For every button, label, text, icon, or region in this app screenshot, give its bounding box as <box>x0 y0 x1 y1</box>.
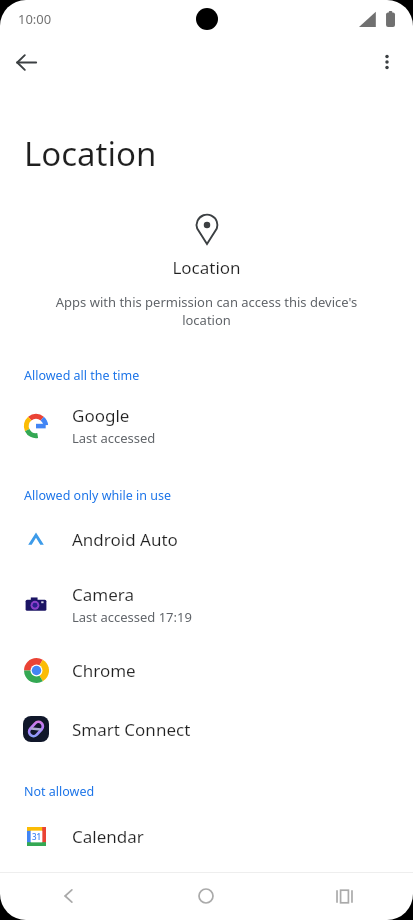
button[interactable]: Recent apps <box>275 872 413 920</box>
button[interactable]: Smart Connect <box>0 711 413 747</box>
staticText: Not allowed <box>24 783 95 800</box>
button[interactable]: Back <box>6 42 46 82</box>
staticText: 10:00 <box>18 10 52 28</box>
staticText: 31 <box>32 831 42 842</box>
staticText: Google <box>72 404 130 427</box>
staticText: Location <box>172 256 241 279</box>
button[interactable]: Camera <box>0 579 413 630</box>
button[interactable]: More options <box>367 42 407 82</box>
staticText: Chrome <box>72 659 136 682</box>
staticText: Apps with this permission can access thi… <box>44 293 369 329</box>
staticText: Last accessed 17:19 <box>72 608 192 626</box>
button[interactable]: 31 <box>0 818 413 854</box>
staticText: Calendar <box>72 825 144 848</box>
button[interactable]: Chrome <box>0 652 413 688</box>
staticText: Location <box>24 131 157 176</box>
staticText: Allowed only while in use <box>24 487 171 504</box>
staticText: Last accessed <box>72 429 156 447</box>
staticText: Smart Connect <box>72 718 191 741</box>
button[interactable]: Google <box>0 400 413 451</box>
button[interactable]: Back <box>0 872 137 920</box>
staticText: Camera <box>72 583 134 606</box>
button[interactable]: Home <box>137 872 275 920</box>
staticText: Android Auto <box>72 528 178 551</box>
button[interactable]: Android Auto <box>0 521 413 557</box>
staticText: Allowed all the time <box>24 367 140 384</box>
